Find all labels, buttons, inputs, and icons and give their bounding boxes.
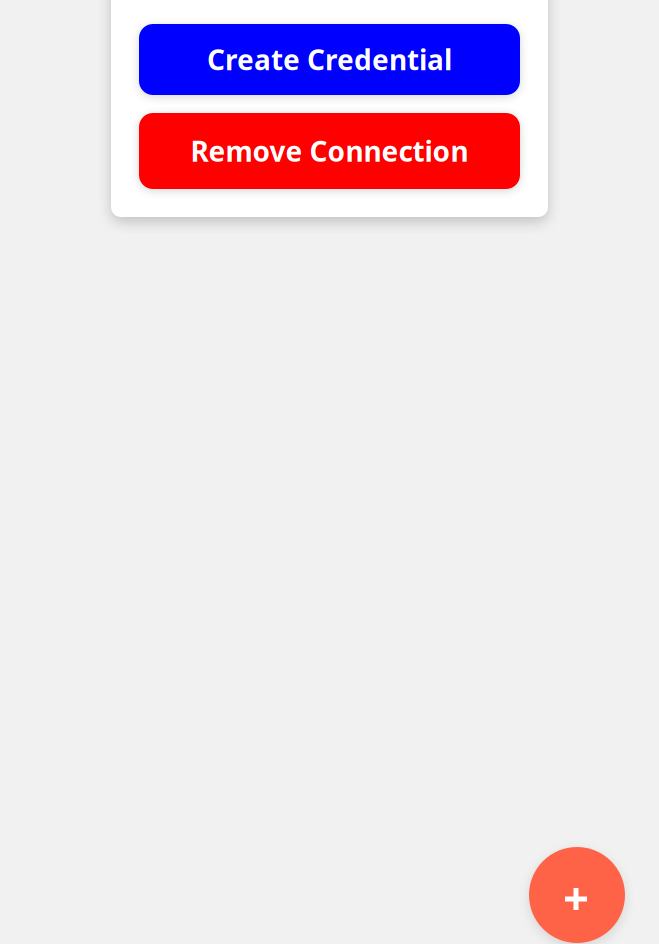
button[interactable]: Create Credential [139,24,520,95]
staticText: Create Credential [207,41,452,78]
staticText: Remove Connection [190,132,468,170]
button[interactable]: Add [529,847,625,943]
button[interactable]: Remove Connection [139,113,520,189]
